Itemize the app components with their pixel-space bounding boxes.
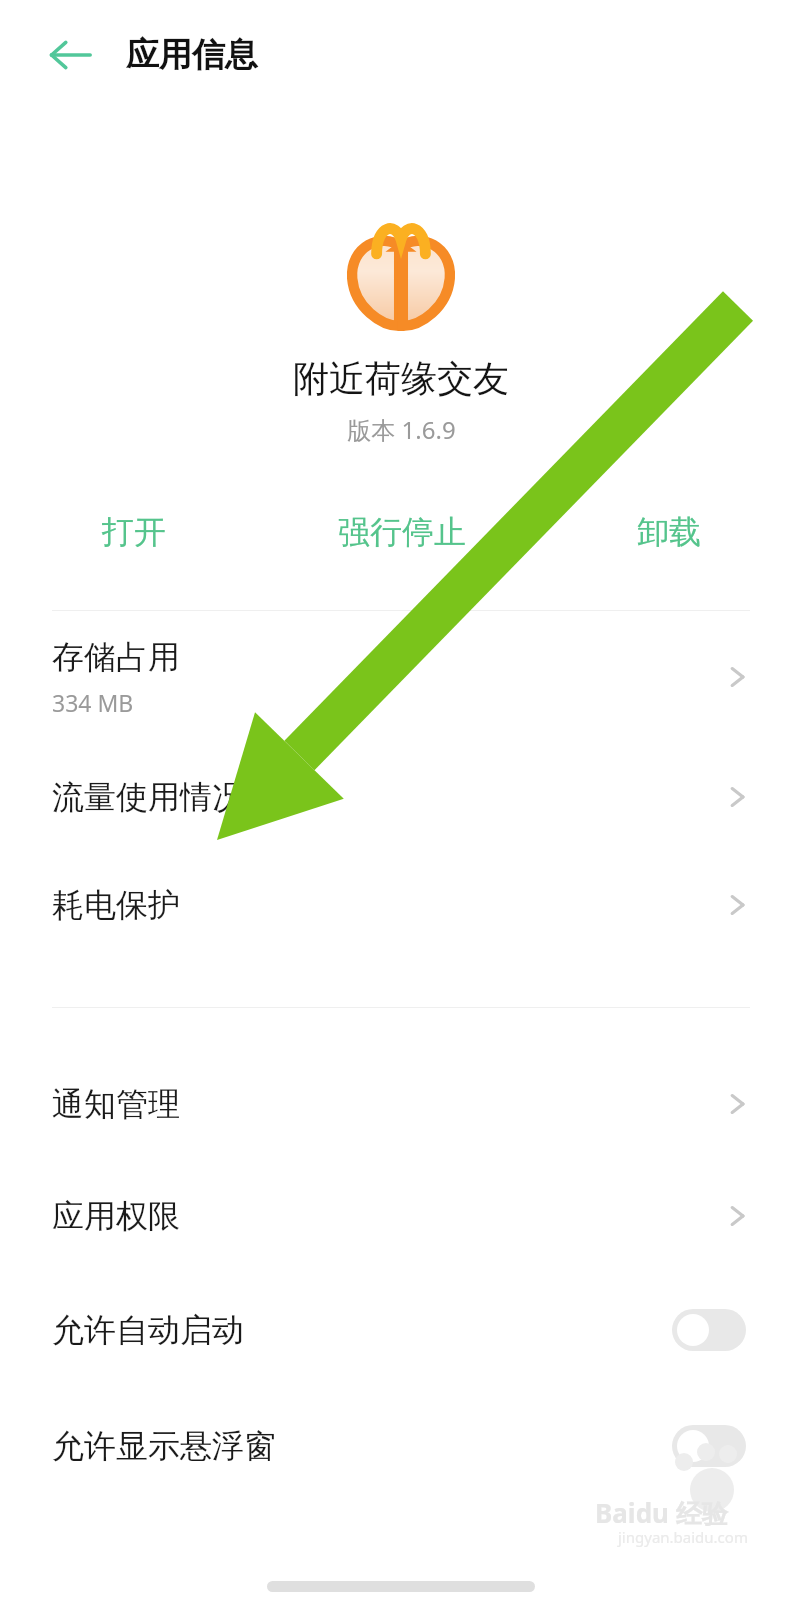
staticText: 耗电保护 [52,885,180,925]
button[interactable]: 耗电保护 [0,851,802,959]
staticText: 版本 1.6.9 [347,413,456,446]
button[interactable]: 应用权限 [0,1160,802,1272]
staticText: jingyan.baidu.com [618,1527,748,1547]
button[interactable]: 流量使用情况 [0,743,802,851]
button[interactable]: 卸载 [535,512,802,552]
button[interactable]: 允许自动启动 [0,1272,802,1388]
button[interactable]: 存储占用 [0,611,802,743]
button[interactable]: 强行停止 [268,512,535,552]
staticText: 允许显示悬浮窗 [52,1426,672,1466]
button[interactable]: Back [34,19,106,91]
staticText: 应用信息 [126,34,258,76]
staticText: 应用权限 [52,1196,180,1236]
button[interactable]: 允许显示悬浮窗 [0,1388,802,1504]
staticText: 附近荷缘交友 [293,356,509,401]
staticText: Baidu 经验 [595,1495,728,1531]
staticText: 334 MB [52,687,134,718]
staticText: 强行停止 [338,512,466,552]
staticText: 流量使用情况 [52,777,244,817]
staticText: 打开 [102,512,166,552]
button[interactable]: 打开 [0,512,268,552]
staticText: 通知管理 [52,1084,180,1124]
button[interactable]: 通知管理 [0,1048,802,1160]
staticText: 存储占用 [52,637,180,677]
staticText: 允许自动启动 [52,1310,672,1350]
staticText: 卸载 [637,512,701,552]
